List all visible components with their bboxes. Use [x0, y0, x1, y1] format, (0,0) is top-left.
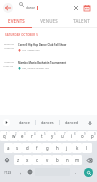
staticText: v — [46, 157, 49, 163]
button[interactable]: TALENT — [65, 15, 97, 27]
button[interactable]: c — [32, 155, 42, 165]
staticText: 1 — [6, 132, 8, 136]
button[interactable]: dances — [36, 115, 59, 130]
staticText: 4 — [34, 132, 36, 136]
staticText: e — [21, 133, 24, 139]
button[interactable]: i — [67, 131, 77, 141]
staticText: h — [56, 145, 59, 151]
staticText: 3 — [24, 132, 26, 136]
staticText: 12:00 AM — [3, 65, 14, 68]
button[interactable]: n — [62, 155, 72, 165]
staticText: 9 — [84, 132, 86, 136]
staticText: 08:00 PM — [4, 43, 14, 46]
button[interactable]: , — [16, 166, 25, 178]
staticText: f — [36, 145, 38, 151]
staticText: l — [86, 145, 88, 151]
staticText: 6 — [54, 132, 56, 136]
button[interactable]: h — [52, 143, 62, 153]
staticText: d — [26, 145, 29, 151]
staticText: j — [66, 145, 68, 151]
button[interactable]: VENUES — [33, 15, 65, 27]
button[interactable]: k — [72, 143, 82, 153]
button[interactable]: Clear search — [70, 0, 81, 15]
button[interactable]: z — [14, 155, 23, 165]
staticText: TALENT — [73, 18, 90, 24]
staticText: VENUES — [40, 18, 58, 24]
button[interactable]: o — [77, 131, 87, 141]
staticText: dance — [19, 120, 30, 125]
button[interactable]: j — [62, 143, 72, 153]
staticText: k — [76, 145, 79, 151]
button[interactable]: 10:00 PM — [0, 61, 97, 70]
button[interactable]: Pick date — [81, 0, 93, 15]
button[interactable]: Shift — [0, 155, 14, 165]
staticText: i — [71, 133, 73, 139]
staticText: w — [12, 133, 16, 139]
button[interactable]: r — [27, 131, 37, 141]
staticText: 8 — [74, 132, 76, 136]
staticText: a — [7, 145, 10, 151]
staticText: t — [41, 133, 43, 139]
staticText: Mambo Mania Bachatón Tournament — [18, 61, 67, 65]
button[interactable]: p — [87, 131, 97, 141]
staticText: z — [17, 157, 20, 163]
staticText: 2 — [15, 132, 17, 136]
button[interactable]: y — [47, 131, 57, 141]
button[interactable]: Open emoji and GIF — [0, 115, 13, 130]
button[interactable]: a — [4, 143, 13, 153]
staticText: 104 | Bailey Hall — [22, 49, 40, 52]
staticText: , — [20, 169, 22, 175]
button[interactable]: t — [37, 131, 47, 141]
button[interactable]: danced — [60, 115, 83, 130]
button[interactable]: dance — [13, 115, 35, 130]
button[interactable]: x — [23, 155, 32, 165]
button[interactable]: e — [18, 131, 27, 141]
staticText: m — [75, 157, 80, 163]
staticText: danced — [65, 120, 79, 125]
button[interactable]: f — [32, 143, 42, 153]
button[interactable]: s — [13, 143, 22, 153]
button[interactable]: Change language — [25, 166, 34, 178]
staticText: Cornell Hip Hop Dance Club Fall Show — [18, 43, 67, 47]
staticText: EVENTS — [8, 18, 25, 24]
button[interactable]: q — [0, 131, 9, 141]
button[interactable]: v — [42, 155, 52, 165]
staticText: q — [3, 133, 6, 139]
staticText: s — [16, 145, 19, 151]
staticText: . — [75, 169, 77, 175]
staticText: ?123 — [4, 170, 12, 175]
staticText: 10:00 PM — [4, 47, 14, 50]
button[interactable]: 08:00 PM — [0, 43, 97, 52]
button[interactable]: b — [52, 155, 62, 165]
staticText: p — [91, 133, 94, 139]
button[interactable]: Backspace — [82, 155, 97, 165]
button[interactable]: . — [71, 166, 80, 178]
staticText: r — [31, 133, 33, 139]
staticText: dance — [26, 6, 36, 10]
staticText: b — [56, 157, 59, 163]
button[interactable]: Search — [84, 168, 93, 177]
staticText: dances — [41, 120, 54, 125]
button[interactable]: Back — [0, 0, 15, 15]
staticText: 7 — [64, 132, 66, 136]
staticText: 5 — [44, 132, 46, 136]
staticText: 0 — [94, 132, 96, 136]
button[interactable]: u — [57, 131, 67, 141]
button[interactable]: Voice input — [83, 115, 97, 130]
button[interactable]: g — [42, 143, 52, 153]
button[interactable]: l — [82, 143, 92, 153]
button[interactable]: EVENTS — [0, 15, 33, 27]
button[interactable]: w — [9, 131, 18, 141]
staticText: 10:00 PM — [4, 61, 14, 64]
button[interactable]: m — [72, 155, 82, 165]
staticText: g — [46, 145, 49, 151]
staticText: o — [81, 133, 84, 139]
staticText: c — [36, 157, 39, 163]
staticText: n — [66, 157, 69, 163]
staticText: x — [26, 157, 29, 163]
staticText: Hall, Willard Straight Hall — [22, 67, 49, 70]
staticText: y — [51, 133, 54, 139]
button[interactable]: d — [22, 143, 32, 153]
button[interactable]: Symbols — [0, 166, 16, 178]
